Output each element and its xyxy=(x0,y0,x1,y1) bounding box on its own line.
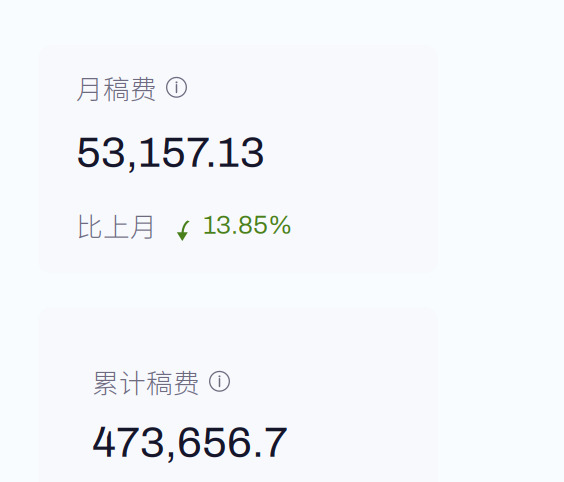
staticText: 473,656.7 xyxy=(92,419,288,466)
staticText: 月稿费 xyxy=(76,68,157,107)
button[interactable]: About 累计稿费 xyxy=(209,371,230,392)
staticText: 比上月 xyxy=(76,206,157,244)
staticText: 53,157.13 xyxy=(76,129,265,176)
staticText: 累计稿费 xyxy=(92,362,200,401)
staticText: 13.85% xyxy=(203,211,293,239)
button[interactable]: About 月稿费 xyxy=(166,77,187,98)
